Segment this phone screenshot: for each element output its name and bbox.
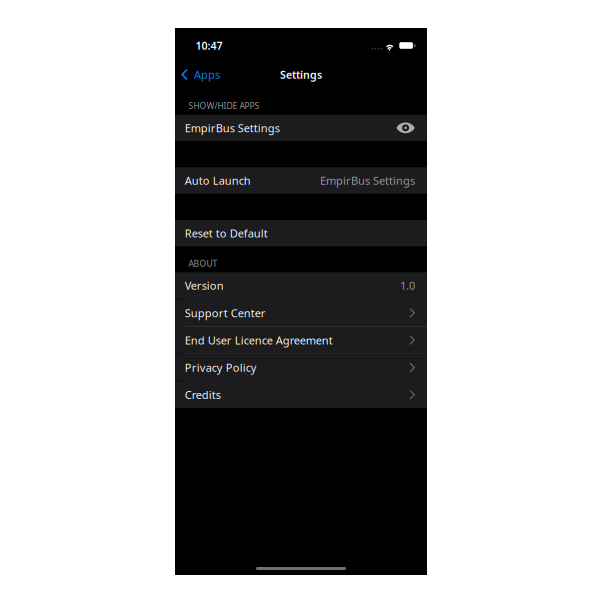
staticText: Support Center — [185, 305, 266, 320]
button[interactable]: Auto Launch — [175, 167, 427, 194]
button[interactable]: Support Center — [175, 300, 427, 326]
staticText: Settings — [280, 67, 322, 82]
staticText: ABOUT — [188, 258, 217, 269]
staticText: SHOW/HIDE APPS — [188, 100, 259, 111]
staticText: Auto Launch — [185, 173, 251, 188]
button[interactable]: Version — [175, 272, 427, 299]
button[interactable]: Privacy Policy — [175, 354, 427, 381]
staticText: Credits — [185, 387, 221, 402]
button[interactable]: EmpirBus Settings — [175, 115, 427, 141]
staticText: Apps — [194, 67, 220, 82]
button[interactable]: Reset to Default — [175, 220, 427, 246]
button[interactable]: End User Licence Agreement — [175, 327, 427, 353]
staticText: EmpirBus Settings — [320, 173, 415, 188]
staticText: 1.0 — [400, 278, 415, 293]
staticText: 10:47 — [195, 38, 222, 53]
staticText: Privacy Policy — [185, 360, 257, 375]
staticText: Version — [185, 278, 224, 293]
button[interactable]: Apps — [175, 63, 226, 86]
staticText: End User Licence Agreement — [185, 333, 333, 348]
button[interactable]: Credits — [175, 381, 427, 408]
staticText: EmpirBus Settings — [185, 120, 280, 135]
staticText: Reset to Default — [185, 226, 268, 241]
